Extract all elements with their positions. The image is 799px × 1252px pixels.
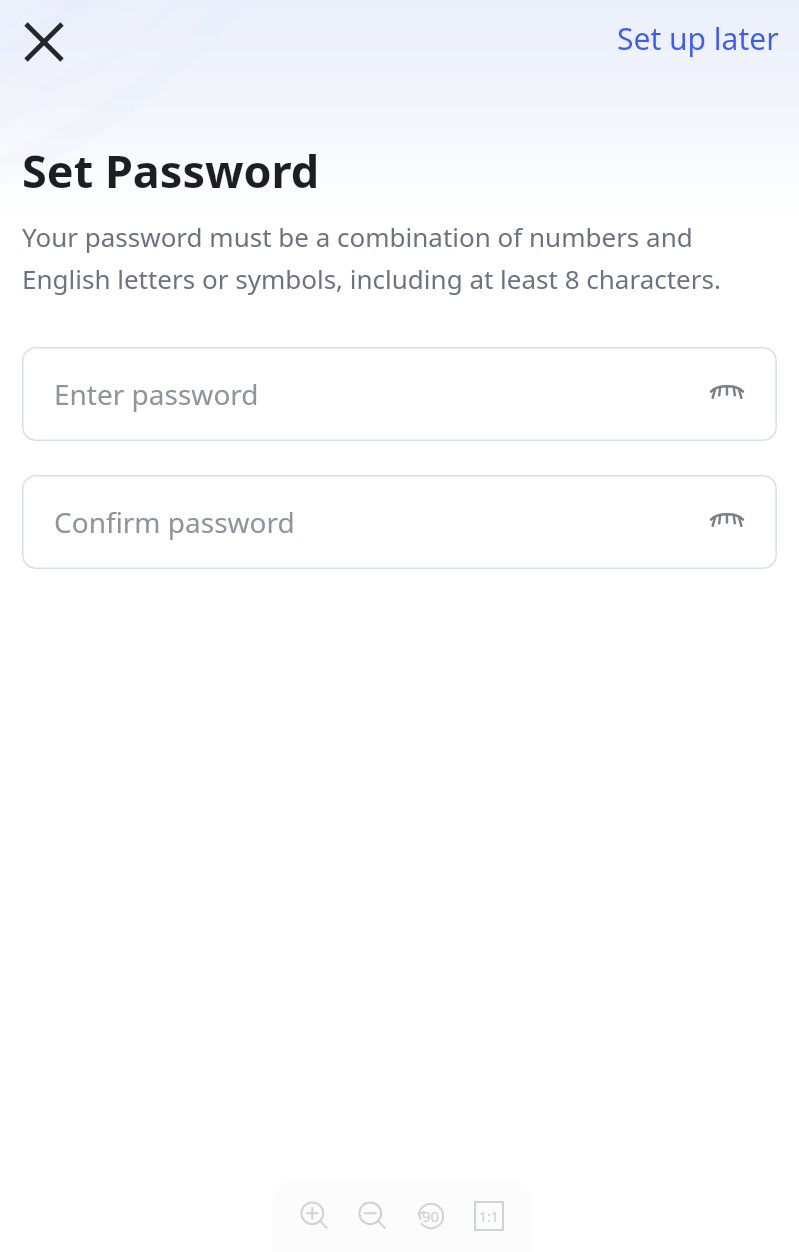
- staticText: 90: [422, 1206, 440, 1226]
- button[interactable]: Show password: [703, 370, 751, 418]
- button[interactable]: Enter password: [22, 347, 777, 441]
- staticText: Set Password: [22, 140, 320, 201]
- button[interactable]: Actual size: [469, 1196, 509, 1236]
- staticText: Set up later: [617, 18, 779, 59]
- staticText: Your password must be a combination of n…: [22, 219, 781, 297]
- staticText: Enter password: [54, 375, 259, 413]
- button[interactable]: Show password: [703, 498, 751, 546]
- button[interactable]: Zoom out: [353, 1196, 393, 1236]
- button[interactable]: Confirm password: [22, 475, 777, 569]
- button[interactable]: Zoom in: [295, 1196, 335, 1236]
- staticText: Confirm password: [54, 503, 295, 541]
- button[interactable]: Close: [14, 12, 74, 72]
- button[interactable]: Rotate 90 degrees: [411, 1196, 451, 1236]
- staticText: 1:1: [479, 1207, 499, 1226]
- button[interactable]: Set up later: [603, 10, 793, 67]
